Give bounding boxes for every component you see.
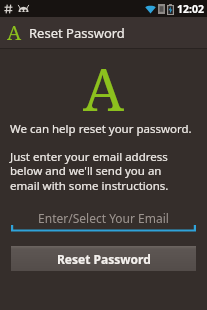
button[interactable]: Enter/Select Your Email <box>11 207 196 233</box>
staticText: A <box>7 19 22 46</box>
staticText: A <box>83 49 124 115</box>
staticText: Just enter your email address below and … <box>10 149 191 194</box>
staticText: 12:02 <box>177 2 204 16</box>
staticText: Reset Password <box>57 251 151 267</box>
button[interactable]: Reset Password <box>11 246 196 271</box>
staticText: We can help reset your password. <box>10 121 192 137</box>
button[interactable]: A <box>0 17 207 48</box>
staticText: Enter/Select Your Email <box>38 210 169 226</box>
staticText: Reset Password <box>29 24 125 42</box>
